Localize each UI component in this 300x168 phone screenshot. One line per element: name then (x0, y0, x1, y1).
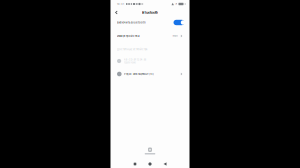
staticText: ДОСТУПНЫЕ УСТРОЙСТВА (117, 48, 147, 51)
button[interactable]: AB:CD:EF:12:34:56 (110, 55, 189, 67)
staticText: Редко используемые (13) (124, 72, 154, 76)
staticText: Redmi (172, 35, 178, 37)
staticText: Имя устройства (117, 34, 139, 38)
button[interactable]: Home (142, 160, 157, 168)
staticText: 71 (175, 2, 177, 6)
staticText: Bluetooth (142, 10, 158, 15)
button[interactable]: Scan for devices (140, 146, 160, 156)
button[interactable]: Включить Bluetooth (110, 17, 189, 28)
staticText: Подключение (124, 61, 136, 64)
button[interactable]: Редко используемые (13) (110, 67, 189, 81)
button[interactable]: Recent apps (127, 160, 142, 168)
button[interactable]: Back (157, 160, 172, 168)
staticText: AB:CD:EF:12:34:56 (124, 58, 146, 61)
staticText: Включить Bluetooth (117, 21, 146, 24)
button[interactable]: Имя устройства (110, 28, 189, 44)
staticText: 10:31 (117, 2, 124, 6)
button[interactable]: Back (110, 8, 122, 17)
